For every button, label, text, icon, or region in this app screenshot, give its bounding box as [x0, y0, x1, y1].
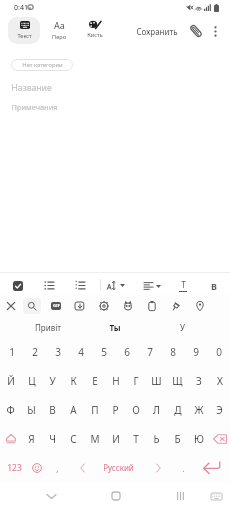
- button[interactable]: Home: [106, 486, 126, 506]
- button[interactable]: Г: [125, 366, 146, 395]
- staticText: .: [182, 462, 185, 474]
- button[interactable]: Enter: [198, 453, 226, 482]
- button[interactable]: 7: [138, 337, 161, 366]
- button[interactable]: Х: [209, 366, 230, 395]
- button[interactable]: М: [84, 424, 105, 453]
- button[interactable]: Я: [21, 424, 42, 453]
- button[interactable]: Bulleted list: [38, 275, 59, 296]
- staticText: Э: [216, 403, 223, 417]
- staticText: 9: [193, 345, 199, 359]
- button[interactable]: Location: [191, 297, 209, 315]
- button[interactable]: Aa: [43, 17, 75, 44]
- button[interactable]: Ц: [21, 366, 42, 395]
- button[interactable]: Previous language: [73, 453, 91, 482]
- staticText: Х: [217, 374, 223, 388]
- button[interactable]: 6: [115, 337, 138, 366]
- staticText: Е: [92, 374, 98, 388]
- button[interactable]: Й: [0, 366, 21, 395]
- button[interactable]: И: [105, 424, 126, 453]
- button[interactable]: А: [63, 395, 84, 424]
- button[interactable]: Л: [146, 395, 167, 424]
- button[interactable]: К: [63, 366, 84, 395]
- staticText: Кисть: [87, 31, 103, 39]
- button[interactable]: Привіт: [18, 320, 78, 334]
- button[interactable]: 1: [0, 337, 23, 366]
- staticText: М: [90, 432, 100, 446]
- button[interactable]: 5: [92, 337, 115, 366]
- button[interactable]: Е: [84, 366, 105, 395]
- button[interactable]: Alignment: [138, 275, 166, 296]
- button[interactable]: GIF: [47, 297, 65, 315]
- button[interactable]: Settings: [95, 297, 113, 315]
- button[interactable]: Т: [125, 424, 146, 453]
- button[interactable]: Attach file: [186, 21, 206, 41]
- button[interactable]: Ф: [0, 395, 21, 424]
- button[interactable]: У: [42, 366, 63, 395]
- button[interactable]: Bold: [203, 275, 224, 296]
- button[interactable]: 2: [23, 337, 46, 366]
- button[interactable]: У: [152, 320, 212, 334]
- button[interactable]: Р: [105, 395, 126, 424]
- staticText: Ж: [194, 403, 204, 417]
- button[interactable]: Next language: [149, 453, 167, 482]
- button[interactable]: Ч: [42, 424, 63, 453]
- button[interactable]: Text size: [102, 275, 130, 296]
- staticText: Б: [174, 432, 181, 446]
- button[interactable]: З: [188, 366, 209, 395]
- button[interactable]: .: [174, 453, 192, 482]
- button[interactable]: Б: [167, 424, 188, 453]
- staticText: У: [180, 322, 185, 333]
- button[interactable]: 3: [46, 337, 69, 366]
- button[interactable]: Change keyboard: [206, 486, 226, 506]
- staticText: 1: [9, 345, 15, 359]
- button[interactable]: ,: [48, 453, 66, 482]
- staticText: Н: [112, 374, 120, 388]
- button[interactable]: Д: [167, 395, 188, 424]
- button[interactable]: П: [84, 395, 105, 424]
- button[interactable]: Нет категории: [11, 59, 73, 71]
- button[interactable]: Н: [105, 366, 126, 395]
- button[interactable]: 123: [2, 453, 26, 482]
- button[interactable]: Close: [2, 297, 20, 315]
- button[interactable]: Recent apps: [170, 486, 190, 506]
- button[interactable]: 9: [184, 337, 207, 366]
- staticText: 0:41: [14, 3, 28, 13]
- button[interactable]: Checklist: [7, 275, 28, 296]
- button[interactable]: Э: [209, 395, 230, 424]
- button[interactable]: Emoji: [27, 453, 47, 482]
- button[interactable]: О: [125, 395, 146, 424]
- button[interactable]: Текст: [8, 17, 40, 44]
- button[interactable]: Ь: [146, 424, 167, 453]
- button[interactable]: Translate: [119, 297, 137, 315]
- button[interactable]: Ы: [21, 395, 42, 424]
- button[interactable]: 4: [69, 337, 92, 366]
- button[interactable]: Кисть: [79, 17, 111, 44]
- button[interactable]: Ш: [146, 366, 167, 395]
- staticText: 7: [147, 345, 153, 359]
- button[interactable]: 8: [161, 337, 184, 366]
- button[interactable]: Hide keyboard: [41, 486, 61, 506]
- button[interactable]: С: [63, 424, 84, 453]
- button[interactable]: Ж: [188, 395, 209, 424]
- staticText: 3: [55, 345, 61, 359]
- button[interactable]: Ю: [188, 424, 209, 453]
- staticText: Ты: [109, 322, 121, 333]
- button[interactable]: More options: [205, 21, 225, 41]
- button[interactable]: Numbered list: [69, 275, 90, 296]
- button[interactable]: Search: [23, 297, 41, 315]
- button[interactable]: Underline: [172, 275, 193, 296]
- button[interactable]: Stickers: [71, 297, 89, 315]
- button[interactable]: Shift: [0, 424, 21, 453]
- button[interactable]: В: [42, 395, 63, 424]
- button[interactable]: Русский: [93, 453, 143, 482]
- button[interactable]: Clipboard: [143, 297, 161, 315]
- button[interactable]: Щ: [167, 366, 188, 395]
- button[interactable]: Backspace: [209, 424, 230, 453]
- button[interactable]: Pin: [167, 297, 185, 315]
- button[interactable]: Ты: [85, 320, 145, 334]
- staticText: ,: [56, 462, 59, 474]
- button[interactable]: 0: [207, 337, 230, 366]
- button[interactable]: Сохранить: [127, 21, 187, 41]
- staticText: Г: [133, 374, 139, 388]
- staticText: Нет категории: [22, 61, 63, 69]
